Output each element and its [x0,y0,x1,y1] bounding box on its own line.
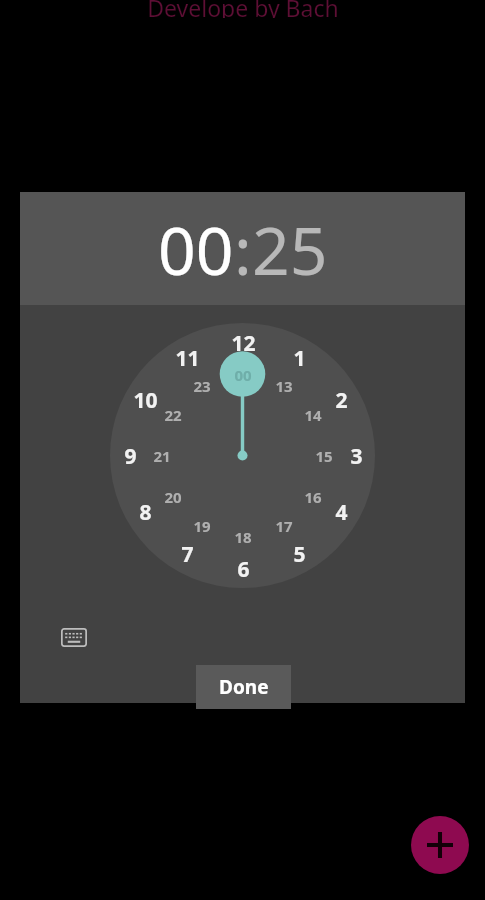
button[interactable]: 1 [282,341,316,375]
button[interactable]: 11 [170,341,204,375]
staticText: Develope by Bach [147,0,339,18]
button[interactable]: 21 [147,441,177,471]
button[interactable]: 7 [170,537,204,571]
staticText: 17 [275,516,293,536]
button[interactable]: 12 [226,326,260,360]
staticText: 2 [335,386,348,415]
button[interactable]: 00 [228,360,258,390]
staticText: 20 [164,487,182,507]
button[interactable]: 5 [282,537,316,571]
staticText: 9 [124,442,137,471]
button[interactable]: 18 [228,522,258,552]
staticText: 23 [193,376,211,396]
button[interactable]: 8 [128,495,162,529]
staticText: 19 [193,516,211,536]
staticText: : [234,204,252,294]
button[interactable]: Add [411,816,469,874]
button[interactable]: 19 [187,511,217,541]
button[interactable]: 00 [158,204,234,294]
staticText: 10 [133,386,158,415]
staticText: 22 [164,405,182,425]
staticText: 6 [237,555,250,584]
button[interactable]: 15 [309,441,339,471]
staticText: 13 [275,376,293,396]
button[interactable]: 6 [226,552,260,586]
staticText: 3 [350,442,363,471]
button[interactable]: 4 [324,495,358,529]
staticText: 15 [315,446,333,466]
button[interactable]: 16 [298,482,328,512]
button[interactable]: 3 [339,439,373,473]
staticText: 00 [234,365,252,385]
button[interactable]: 20 [158,482,188,512]
button[interactable]: 23 [187,371,217,401]
staticText: 7 [181,540,194,569]
button[interactable]: 2 [324,383,358,417]
button[interactable]: 25 [252,204,328,294]
button[interactable]: Done [196,665,291,709]
staticText: 14 [304,405,322,425]
staticText: 8 [139,498,152,527]
staticText: Done [219,674,269,700]
button[interactable]: 13 [269,371,299,401]
staticText: 1 [293,344,306,373]
button[interactable]: 22 [158,400,188,430]
staticText: 12 [231,329,256,358]
staticText: 5 [293,540,306,569]
staticText: 18 [234,527,252,547]
button[interactable]: 17 [269,511,299,541]
button[interactable]: Switch to text input [52,615,96,659]
staticText: 4 [335,498,348,527]
staticText: 16 [304,487,322,507]
button[interactable]: 14 [298,400,328,430]
staticText: 21 [153,446,171,466]
staticText: 11 [175,344,200,373]
button[interactable]: 9 [113,439,147,473]
button[interactable]: 10 [128,383,162,417]
